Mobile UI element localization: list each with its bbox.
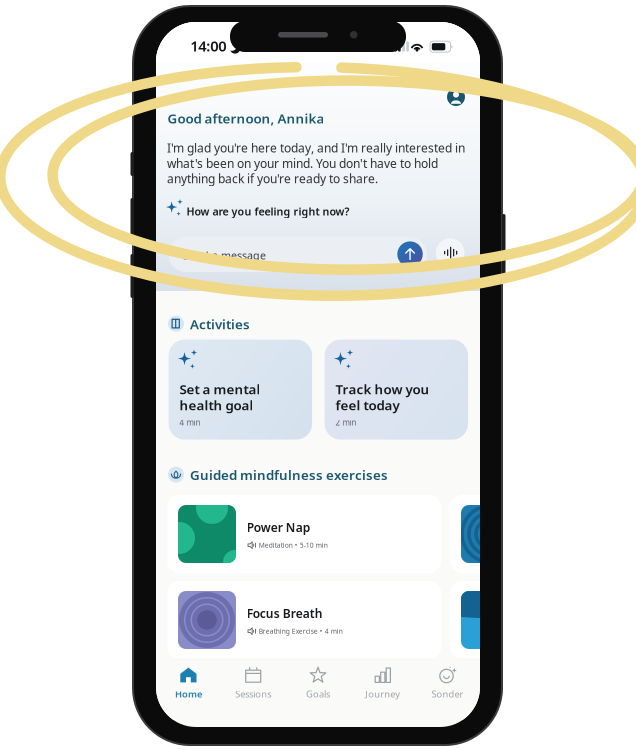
button[interactable]: Profile [447,88,465,106]
staticText: Sessions [235,688,271,700]
button[interactable]: Focus Breath [167,581,441,659]
staticText: I'm glad you're here today, and I'm real… [167,140,465,156]
staticText: Journey [365,688,400,700]
staticText: How are you feeling right now? [187,204,350,218]
staticText: Home [175,688,202,700]
button[interactable]: Set a mental [169,340,312,440]
button[interactable]: Sonder [415,663,480,703]
staticText: Send a message [183,248,266,262]
button[interactable]: More exercises [450,581,560,659]
staticText: what's been on your mind. You don't have… [167,155,438,171]
staticText: Meditation • 5-10 min [259,541,328,550]
button[interactable]: Sessions [221,663,286,703]
staticText: 4 min [179,417,200,428]
button[interactable]: Home [156,663,221,703]
button[interactable]: More exercises [450,495,560,573]
staticText: feel today [335,396,399,414]
staticText: Focus Breath [247,605,323,621]
staticText: Set a mental [179,380,260,398]
staticText: Activities [190,315,250,333]
button[interactable]: Goals [286,663,350,703]
staticText: Power Nap [247,519,311,535]
button[interactable]: Power Nap [167,495,441,573]
staticText: anything back if you're ready to share. [167,171,378,186]
staticText: health goal [179,396,253,414]
staticText: 2 min [335,417,356,428]
button[interactable]: Journey [350,663,415,703]
staticText: Goals [306,688,330,700]
staticText: Guided mindfulness exercises [190,466,388,484]
staticText: Good afternoon, Annika [167,109,324,127]
staticText: Track how you [335,380,429,398]
staticText: Sonder [432,688,464,700]
staticText: Breathing Exercise • 4 min [259,627,343,636]
button[interactable]: Track how you [325,340,468,440]
staticText: 14:00 [190,36,226,55]
